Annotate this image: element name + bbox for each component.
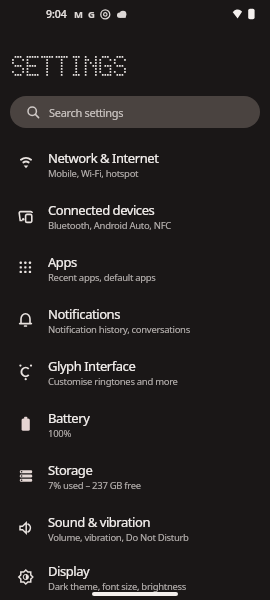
staticText: Search settings bbox=[49, 105, 124, 120]
staticText: Volume, vibration, Do Not Disturb bbox=[48, 531, 189, 544]
button[interactable]: Battery bbox=[0, 398, 270, 450]
staticText: Bluetooth, Android Auto, NFC bbox=[48, 219, 172, 232]
staticText: 100% bbox=[48, 427, 71, 440]
button[interactable]: Apps bbox=[0, 242, 270, 294]
staticText: Apps bbox=[48, 253, 77, 271]
staticText: G bbox=[88, 8, 95, 21]
staticText: Notifications bbox=[48, 305, 120, 323]
staticText: Notification history, conversations bbox=[48, 323, 190, 336]
button[interactable]: Storage bbox=[0, 450, 270, 502]
staticText: Display bbox=[48, 562, 90, 580]
staticText: Customise ringtones and more bbox=[48, 375, 178, 388]
button[interactable]: Connected devices bbox=[0, 190, 270, 242]
staticText: Mobile, Wi-Fi, hotspot bbox=[48, 167, 139, 180]
staticText: 9:04 bbox=[46, 7, 67, 21]
staticText: 7% used – 237 GB free bbox=[48, 479, 141, 492]
staticText: Recent apps, default apps bbox=[48, 271, 156, 284]
button[interactable]: Sound & vibration bbox=[0, 502, 270, 554]
staticText: M bbox=[74, 8, 83, 21]
staticText: Sound & vibration bbox=[48, 513, 150, 531]
staticText: Dark theme, font size, brightness bbox=[48, 580, 187, 593]
staticText: Connected devices bbox=[48, 201, 155, 219]
button[interactable]: Search settings bbox=[10, 96, 260, 128]
staticText: Storage bbox=[48, 461, 93, 479]
button[interactable]: Notifications bbox=[0, 294, 270, 346]
staticText: Network & Internet bbox=[48, 149, 159, 167]
button[interactable]: Display bbox=[0, 554, 270, 600]
staticText: Glyph Interface bbox=[48, 357, 136, 375]
button[interactable]: Glyph Interface bbox=[0, 346, 270, 398]
staticText: Battery bbox=[48, 409, 90, 427]
button[interactable]: Network & Internet bbox=[0, 138, 270, 190]
